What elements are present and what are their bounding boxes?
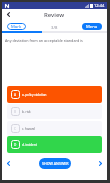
- button[interactable]: Mark: [7, 23, 26, 30]
- button[interactable]: Back: [2, 9, 15, 20]
- button[interactable]: B: [7, 104, 102, 119]
- button[interactable]: Next question: [94, 157, 107, 170]
- staticText: 3/8: [51, 25, 58, 31]
- button[interactable]: D: [7, 136, 102, 153]
- staticText: A: [14, 93, 17, 97]
- staticText: Mark: [11, 24, 22, 30]
- staticText: 12:44: [94, 3, 105, 8]
- staticText: Any deviation from an acceptable standar…: [5, 38, 83, 43]
- staticText: c. hazard: [22, 127, 35, 131]
- staticText: B: [14, 110, 17, 114]
- staticText: Review: [44, 11, 65, 19]
- staticText: C: [14, 127, 17, 131]
- staticText: Menu: [86, 24, 98, 30]
- button[interactable]: Previous question: [2, 157, 15, 170]
- staticText: a. policy violation: [22, 93, 47, 97]
- button[interactable]: C: [7, 121, 102, 136]
- button[interactable]: SHOW ANSWER: [39, 158, 71, 169]
- button[interactable]: Menu: [82, 23, 102, 30]
- staticText: b. risk: [22, 110, 31, 114]
- button[interactable]: A: [7, 86, 102, 103]
- staticText: d. incident: [22, 143, 37, 147]
- staticText: SHOW ANSWER: [42, 161, 69, 166]
- staticText: D: [14, 143, 17, 147]
